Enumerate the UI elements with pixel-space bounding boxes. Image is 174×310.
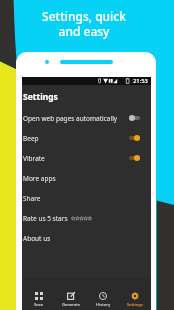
staticText: History <box>96 302 111 308</box>
button[interactable]: Share <box>22 188 151 208</box>
button[interactable]: About us <box>22 228 151 248</box>
button[interactable]: Scan <box>22 278 55 310</box>
staticText: 21:53 <box>133 77 148 85</box>
button[interactable]: Vibrate <box>22 148 151 168</box>
button[interactable]: History <box>87 278 119 310</box>
button[interactable]: Rate us 5 stars <box>22 208 151 228</box>
staticText: Settings <box>127 302 143 308</box>
button[interactable]: Open web pages automatically <box>22 108 151 128</box>
staticText: Generate <box>62 302 81 308</box>
staticText: Beep <box>23 134 39 143</box>
staticText: Scan <box>34 302 44 308</box>
staticText: Share <box>23 194 41 203</box>
button[interactable]: Generate <box>55 278 87 310</box>
button[interactable]: Settings <box>119 278 151 310</box>
staticText: Rate us 5 stars <box>23 214 68 223</box>
staticText: More apps <box>23 174 56 183</box>
button[interactable]: Beep <box>22 128 151 148</box>
button[interactable]: More apps <box>22 168 151 188</box>
staticText: Settings, quick and easy <box>0 8 171 39</box>
staticText: Settings <box>23 91 58 103</box>
staticText: About us <box>23 234 51 243</box>
staticText: Open web pages automatically <box>23 114 118 123</box>
staticText: Vibrate <box>23 154 45 163</box>
